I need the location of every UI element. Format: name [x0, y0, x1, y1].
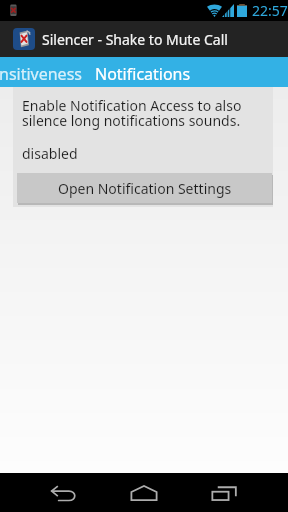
staticText: nsitiveness — [0, 63, 82, 85]
button[interactable]: Open Notification Settings — [17, 173, 272, 203]
button[interactable]: Back — [43, 473, 83, 512]
button[interactable]: Home — [124, 473, 164, 512]
button[interactable]: Notifications — [95, 57, 205, 87]
button[interactable]: Silencer - Shake to Mute Call — [0, 21, 288, 57]
staticText: disabled — [22, 144, 78, 163]
staticText: Notifications — [95, 63, 191, 85]
button[interactable]: Recent apps — [204, 473, 244, 512]
button[interactable]: nsitiveness — [0, 57, 82, 87]
staticText: Enable Notification Access to also silen… — [22, 96, 242, 130]
staticText: 22:57 — [252, 1, 288, 20]
staticText: Silencer - Shake to Mute Call — [42, 30, 228, 49]
staticText: Open Notification Settings — [58, 179, 232, 198]
